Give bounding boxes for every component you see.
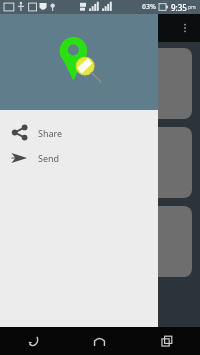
button[interactable] xyxy=(8,127,192,198)
staticText: 63% xyxy=(142,2,156,12)
button[interactable] xyxy=(8,206,192,277)
button[interactable] xyxy=(8,48,192,119)
button[interactable]: Share xyxy=(0,120,158,145)
staticText: 9:35 xyxy=(171,2,187,13)
staticText: Send xyxy=(38,152,60,164)
button[interactable]: Send xyxy=(0,145,158,170)
button[interactable]: Home xyxy=(66,327,133,355)
button[interactable]: More options xyxy=(176,19,194,37)
button[interactable]: Recents xyxy=(133,327,200,355)
staticText: Share xyxy=(38,127,63,139)
staticText: pm xyxy=(188,4,196,11)
button[interactable]: Back xyxy=(0,327,66,355)
